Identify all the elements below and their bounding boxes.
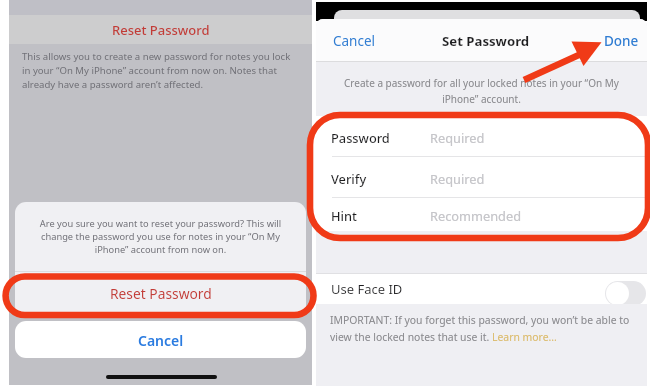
staticText: Set Password bbox=[442, 32, 530, 50]
button[interactable]: Use Face ID bbox=[316, 274, 647, 304]
button[interactable]: Cancel bbox=[15, 321, 306, 358]
button[interactable]: Reset Password bbox=[15, 272, 306, 317]
staticText: This allows you to create a new password… bbox=[22, 50, 300, 91]
staticText: Required bbox=[430, 129, 485, 146]
staticText: Done bbox=[604, 32, 639, 50]
staticText: Are you sure you want to reset your pass… bbox=[30, 217, 291, 256]
staticText: Password bbox=[331, 129, 390, 146]
staticText: Create a password for all your locked no… bbox=[334, 76, 629, 105]
staticText: IMPORTANT: If you forget this password, … bbox=[330, 313, 647, 344]
button[interactable]: Hint bbox=[316, 198, 647, 231]
staticText: Reset Password bbox=[110, 284, 212, 303]
staticText: Hint bbox=[331, 207, 357, 224]
staticText: Cancel bbox=[333, 32, 376, 50]
staticText: Use Face ID bbox=[331, 280, 403, 298]
staticText: Verify bbox=[331, 170, 367, 187]
staticText: Required bbox=[430, 170, 485, 187]
button[interactable]: Use Face ID toggle bbox=[605, 281, 646, 306]
staticText: Recommended bbox=[430, 207, 522, 224]
button[interactable]: Done bbox=[594, 26, 647, 56]
button[interactable]: Password bbox=[316, 116, 647, 156]
button[interactable]: Cancel bbox=[316, 26, 386, 56]
button[interactable]: Verify bbox=[316, 157, 647, 197]
staticText: Cancel bbox=[138, 331, 184, 350]
staticText: Reset Password bbox=[112, 21, 210, 39]
